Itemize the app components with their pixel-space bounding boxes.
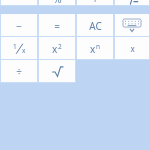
staticText: 1 xyxy=(13,42,17,51)
button[interactable]: Divide xyxy=(0,60,38,83)
button[interactable]: Plus minus xyxy=(114,0,150,6)
staticText: x xyxy=(130,43,135,54)
staticText: AC xyxy=(89,19,102,33)
button[interactable]: x squared xyxy=(38,37,76,60)
staticText: − xyxy=(16,19,22,33)
staticText: 2 xyxy=(58,42,62,51)
button[interactable]: Plus xyxy=(76,0,114,6)
button[interactable]: Multiply xyxy=(114,37,150,60)
staticText: = xyxy=(54,19,60,33)
button[interactable]: All clear xyxy=(76,14,114,37)
button[interactable]: Minus xyxy=(0,14,38,37)
staticText: x xyxy=(52,42,58,56)
button[interactable]: Square root xyxy=(38,60,76,83)
staticText: x xyxy=(22,46,26,55)
staticText: + xyxy=(92,0,98,6)
button[interactable]: x to the power n xyxy=(76,37,114,60)
button[interactable]: One over x xyxy=(0,37,38,60)
staticText: ÷ xyxy=(16,65,22,79)
staticText: x xyxy=(90,42,96,56)
button[interactable]: Blank xyxy=(0,0,38,6)
button[interactable]: Percent xyxy=(38,0,76,6)
staticText: % xyxy=(53,0,62,6)
button[interactable]: Equals xyxy=(38,14,76,37)
staticText: n xyxy=(96,42,101,51)
button[interactable]: Hide keyboard xyxy=(114,14,150,37)
